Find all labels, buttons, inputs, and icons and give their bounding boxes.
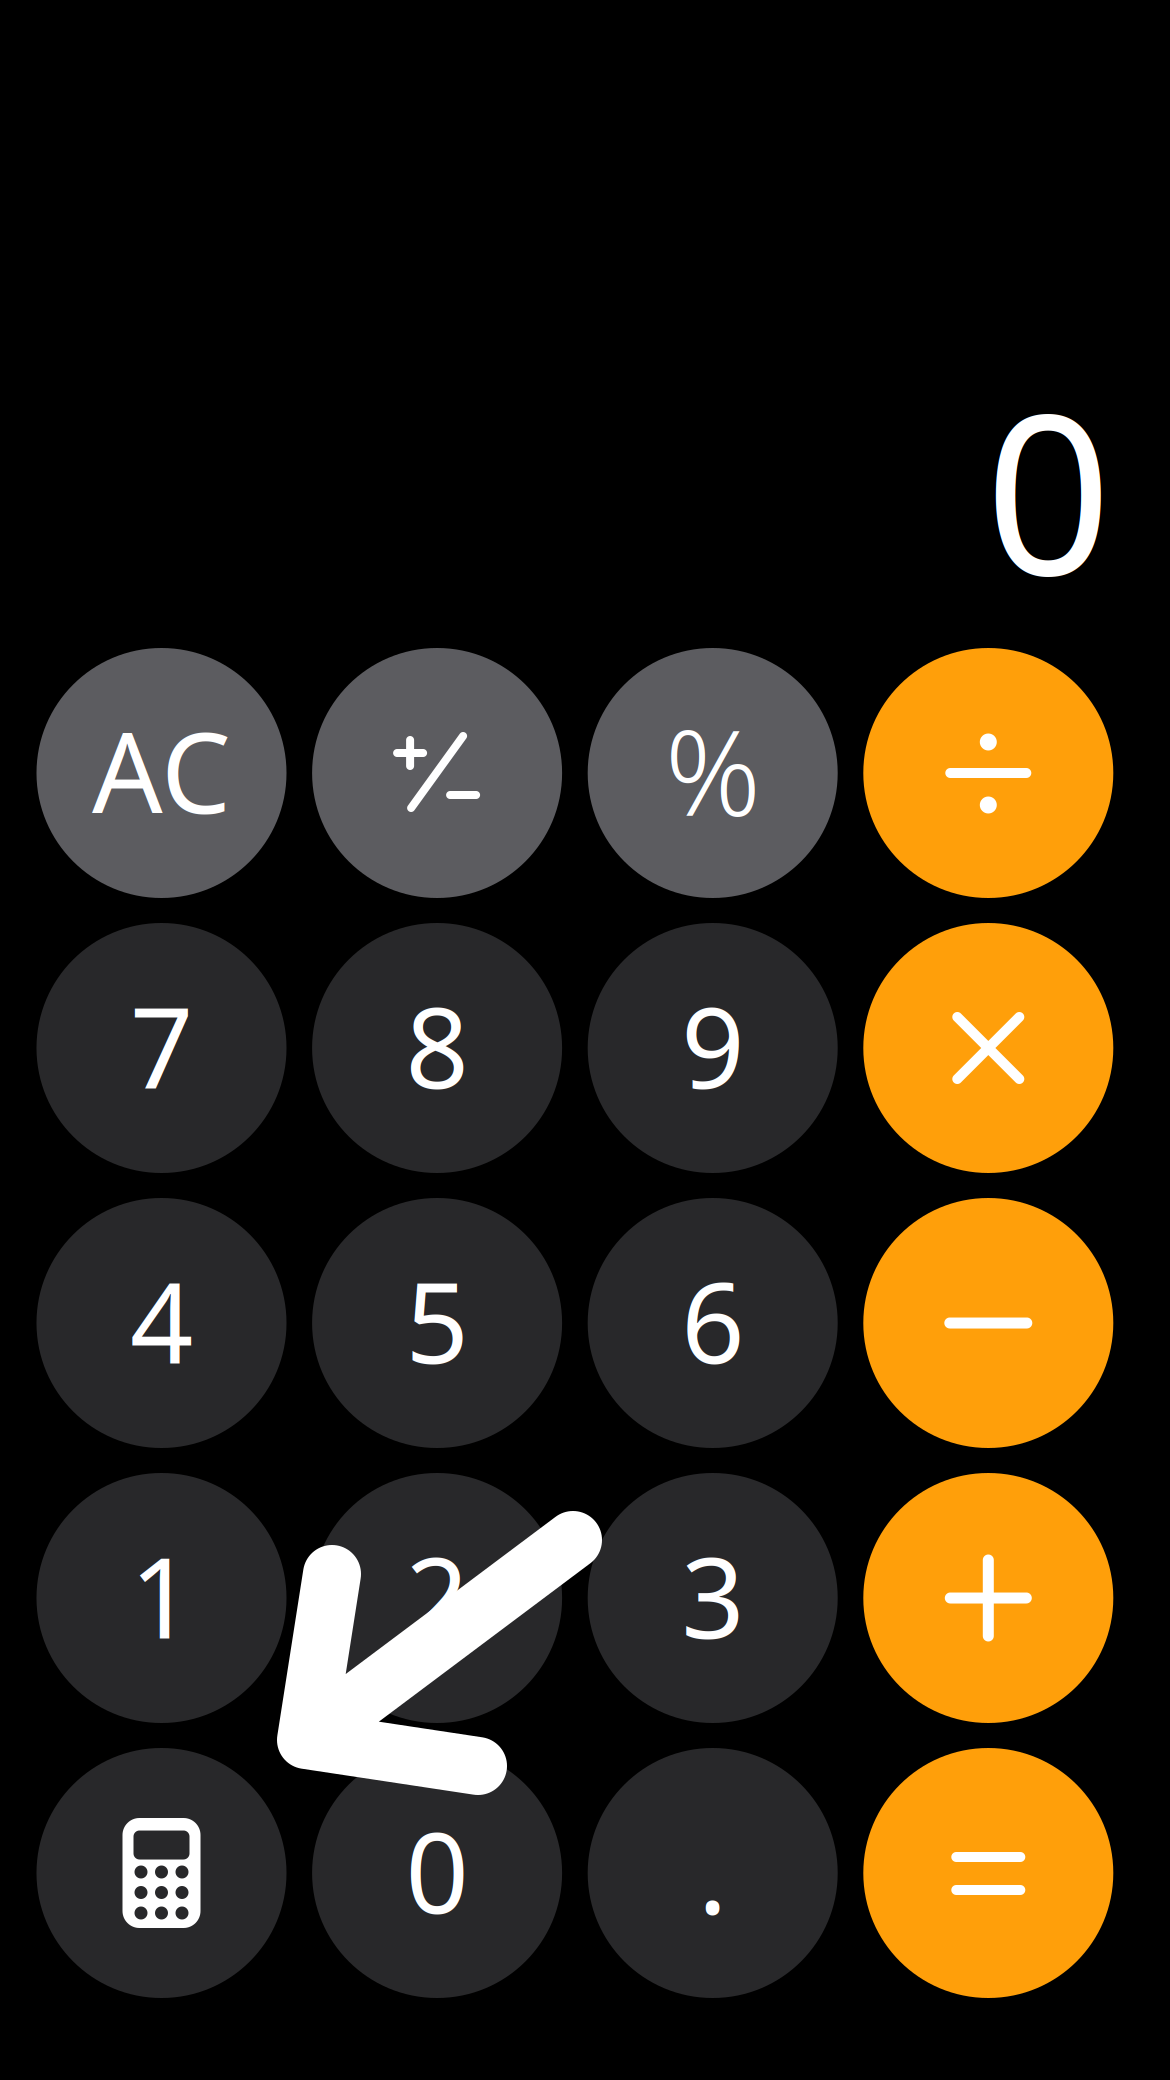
button[interactable]: 2 xyxy=(312,1473,562,1723)
staticText: 5 xyxy=(406,1247,469,1394)
button[interactable]: % xyxy=(588,648,838,898)
button[interactable]: Scientific calculator xyxy=(36,1748,286,1998)
button[interactable]: 1 xyxy=(36,1473,286,1723)
staticText: 1 xyxy=(130,1522,193,1669)
button[interactable]: 7 xyxy=(36,923,286,1173)
button[interactable]: 8 xyxy=(312,923,562,1173)
staticText: AC xyxy=(92,697,231,844)
staticText: 6 xyxy=(681,1247,744,1394)
button[interactable]: 5 xyxy=(312,1198,562,1448)
staticText: . xyxy=(698,1797,728,1944)
button[interactable]: Multiply xyxy=(863,923,1113,1173)
staticText: 4 xyxy=(130,1247,193,1394)
staticText: 0 xyxy=(985,342,1112,636)
button[interactable]: 6 xyxy=(588,1198,838,1448)
button[interactable]: Divide xyxy=(863,648,1113,898)
button[interactable]: Subtract xyxy=(863,1198,1113,1448)
button[interactable]: . xyxy=(588,1748,838,1998)
button[interactable]: 4 xyxy=(36,1198,286,1448)
staticText: 2 xyxy=(406,1522,469,1669)
button[interactable]: AC xyxy=(36,648,286,898)
staticText: 9 xyxy=(681,972,744,1119)
staticText: 0 xyxy=(406,1797,469,1944)
button[interactable]: 0 xyxy=(312,1748,562,1998)
button[interactable]: Add xyxy=(863,1473,1113,1723)
staticText: % xyxy=(665,691,761,849)
button[interactable]: 3 xyxy=(588,1473,838,1723)
staticText: 8 xyxy=(406,972,469,1119)
staticText: 7 xyxy=(130,972,193,1119)
button[interactable]: 9 xyxy=(588,923,838,1173)
button[interactable]: Equals xyxy=(863,1748,1113,1998)
staticText: 3 xyxy=(681,1522,744,1669)
button[interactable]: Plus minus xyxy=(312,648,562,898)
